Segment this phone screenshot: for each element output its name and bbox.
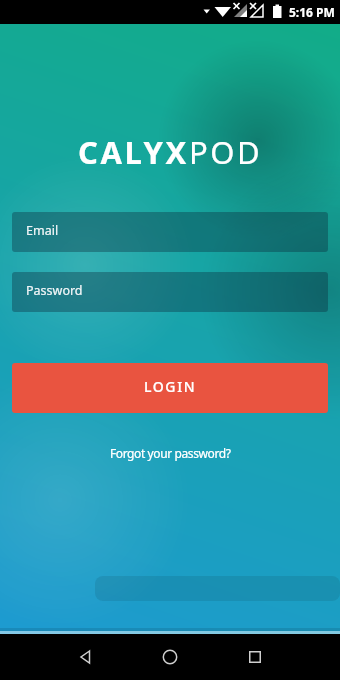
button[interactable] — [61, 634, 109, 680]
staticText: 5:16 PM — [289, 4, 335, 20]
staticText: Forgot your password? — [110, 445, 231, 461]
staticText: LOGIN — [144, 377, 197, 396]
staticText: Password — [26, 282, 83, 299]
staticText: Email — [26, 222, 59, 239]
button[interactable] — [146, 634, 194, 680]
button[interactable]: Password — [12, 272, 328, 312]
button[interactable]: Forgot your password? — [106, 441, 235, 465]
button[interactable]: Email — [12, 212, 328, 252]
button[interactable]: LOGIN — [12, 363, 328, 413]
staticText: CALYXPOD — [78, 131, 263, 173]
button[interactable] — [231, 634, 279, 680]
